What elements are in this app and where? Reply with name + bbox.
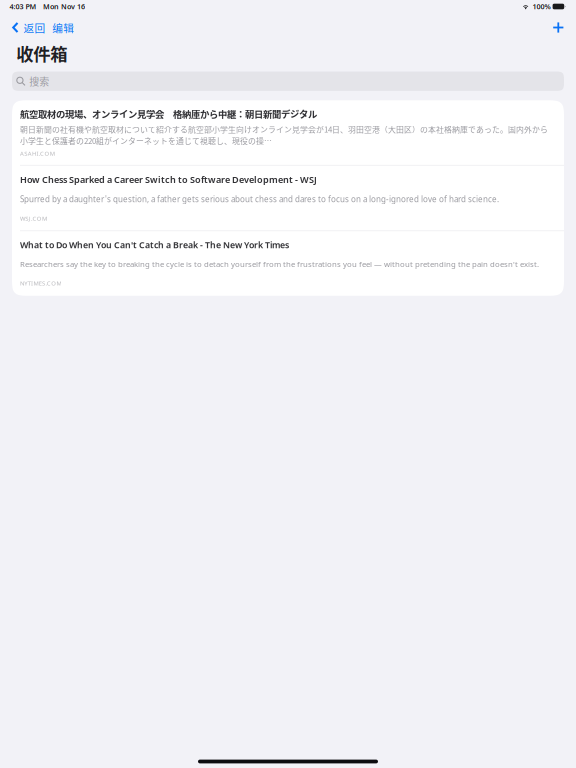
button[interactable]: How Chess Sparked a Career Switch to Sof… <box>12 166 564 230</box>
staticText: 航空取材の現場、オンライン見学会 格納庫から中継：朝日新聞デジタル <box>20 107 317 120</box>
staticText: Mon Nov 16 <box>43 2 85 11</box>
staticText: 收件箱 <box>16 41 67 66</box>
staticText: NYTIMES.COM <box>20 279 61 287</box>
staticText: 100% <box>532 2 550 11</box>
button[interactable]: New item <box>545 22 576 33</box>
button[interactable]: 编辑 <box>51 20 80 35</box>
button[interactable]: What to Do When You Can't Catch a Break … <box>12 231 564 296</box>
staticText: Spurred by a daughter's question, a fath… <box>20 194 499 205</box>
button[interactable]: 航空取材の現場、オンライン見学会 格納庫から中継：朝日新聞デジタル <box>12 100 564 165</box>
staticText: 返回 <box>23 20 45 35</box>
staticText: What to Do When You Can't Catch a Break … <box>20 239 289 251</box>
button[interactable]: 搜索 <box>12 71 564 91</box>
staticText: 4:03 PM <box>9 2 36 11</box>
staticText: 编辑 <box>52 20 74 35</box>
staticText: WSJ.COM <box>20 214 47 222</box>
staticText: 搜索 <box>29 74 49 88</box>
staticText: How Chess Sparked a Career Switch to Sof… <box>20 173 317 186</box>
staticText: Researchers say the key to breaking the … <box>20 259 539 269</box>
button[interactable]: 返回 <box>12 20 51 35</box>
staticText: ASAHI.COM <box>20 149 55 157</box>
staticText: 朝日新聞の社有機や航空取材について紹介する航空部小学生向けオンライン見学会が14… <box>20 123 548 146</box>
